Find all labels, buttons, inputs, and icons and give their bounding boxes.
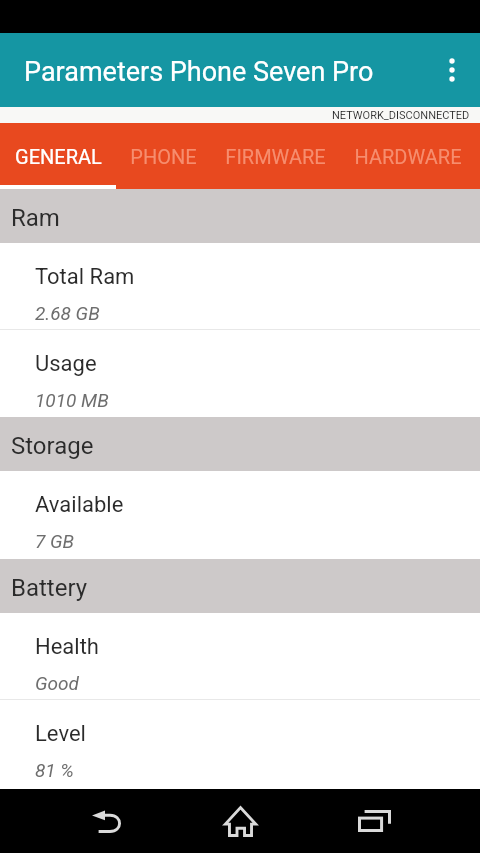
button[interactable]: Back xyxy=(67,789,147,853)
button[interactable]: GENERAL xyxy=(0,123,116,189)
button[interactable]: Home xyxy=(200,789,280,853)
staticText: FIRMWARE xyxy=(225,145,326,168)
staticText: HARDWARE xyxy=(354,145,462,168)
staticText: Storage xyxy=(11,432,94,460)
staticText: NETWORK_DISCONNECTED xyxy=(332,109,470,122)
staticText: Level xyxy=(35,721,86,747)
staticText: Good xyxy=(35,672,79,694)
button[interactable]: Level xyxy=(0,700,480,789)
button[interactable]: Available xyxy=(0,471,480,559)
staticText: GENERAL xyxy=(15,145,102,168)
staticText: Available xyxy=(35,492,124,518)
staticText: 2.68 GB xyxy=(35,302,100,324)
staticText: PHONE xyxy=(130,145,197,168)
staticText: Parameters Phone Seven Pro xyxy=(24,56,374,88)
staticText: Ram xyxy=(11,204,60,232)
button[interactable]: PHONE xyxy=(116,123,211,189)
staticText: 1010 MB xyxy=(35,389,109,411)
button[interactable]: HARDWARE xyxy=(340,123,476,189)
staticText: 81 % xyxy=(35,759,74,781)
staticText: Health xyxy=(35,634,99,660)
button[interactable]: Usage xyxy=(0,330,480,417)
staticText: Battery xyxy=(11,574,88,602)
staticText: Total Ram xyxy=(35,264,135,290)
button[interactable]: FIRMWARE xyxy=(209,123,342,189)
button[interactable]: Health xyxy=(0,613,480,700)
button[interactable]: More options xyxy=(423,33,480,107)
button[interactable]: Total Ram xyxy=(0,243,480,330)
staticText: 7 GB xyxy=(35,530,75,552)
staticText: Usage xyxy=(35,351,97,377)
button[interactable]: Recent apps xyxy=(334,789,414,853)
